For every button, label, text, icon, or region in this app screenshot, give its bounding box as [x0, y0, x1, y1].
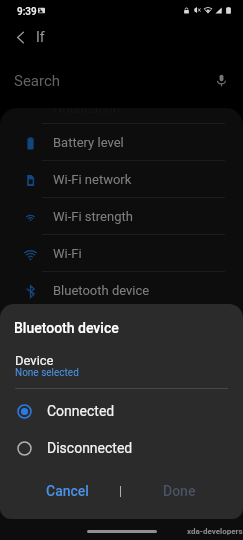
staticText: Done	[163, 483, 196, 499]
button[interactable]: Voice search	[208, 67, 234, 93]
button[interactable]: Wi-Fi	[0, 235, 243, 272]
button[interactable]: Disconnected	[0, 433, 243, 463]
button[interactable]: Navigate up	[5, 22, 35, 52]
staticText: Connected	[47, 403, 115, 419]
button[interactable]: Battery level	[0, 124, 243, 161]
staticText: None selected	[15, 367, 79, 379]
staticText: Bluetooth device	[53, 283, 150, 298]
staticText: Search	[14, 72, 61, 90]
staticText: Wi-Fi network	[53, 172, 132, 187]
staticText: Wi-Fi	[53, 246, 82, 261]
staticText: xda-developers	[187, 527, 243, 536]
staticText: Bluetooth device	[14, 320, 119, 336]
staticText: Device	[15, 353, 54, 368]
button[interactable]: Done	[152, 478, 207, 504]
staticText: Cancel	[46, 483, 89, 499]
staticText: If	[36, 29, 45, 45]
staticText: 9:39	[17, 6, 37, 18]
button[interactable]: Bluetooth device	[0, 272, 243, 309]
staticText: Battery level	[53, 135, 124, 150]
button[interactable]: Wi-Fi strength	[0, 198, 243, 235]
button[interactable]: Connected	[0, 396, 243, 426]
staticText: Wi-Fi strength	[53, 209, 133, 224]
button[interactable]: Cancel	[35, 478, 100, 504]
staticText: Disconnected	[47, 440, 133, 456]
button[interactable]: Wi-Fi network	[0, 161, 243, 198]
